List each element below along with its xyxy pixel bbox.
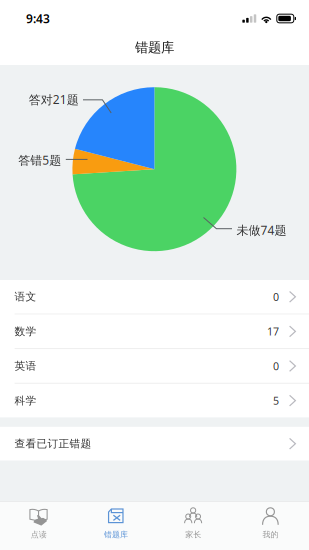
staticText: 错题库: [104, 530, 128, 539]
button[interactable]: 查看已订正错题: [0, 427, 309, 460]
staticText: 答对21题: [29, 91, 79, 107]
staticText: 英语: [15, 359, 37, 372]
button[interactable]: 我的: [232, 501, 309, 550]
button[interactable]: 点读: [0, 501, 77, 550]
staticText: 数学: [15, 325, 37, 338]
staticText: 错题库: [135, 39, 174, 56]
staticText: 0: [273, 359, 279, 373]
button[interactable]: 科学: [0, 384, 309, 417]
staticText: 0: [273, 290, 279, 304]
button[interactable]: 数学: [0, 315, 309, 348]
staticText: 17: [267, 324, 279, 338]
staticText: 5: [273, 393, 279, 408]
button[interactable]: 语文: [0, 280, 309, 314]
staticText: 语文: [15, 290, 37, 303]
staticText: 点读: [31, 530, 47, 539]
staticText: 答错5题: [18, 152, 61, 168]
button[interactable]: 错题库: [77, 501, 154, 550]
button[interactable]: 英语: [0, 349, 309, 383]
button[interactable]: 家长: [154, 501, 232, 550]
staticText: 科学: [15, 394, 37, 407]
staticText: 9:43: [26, 10, 50, 26]
staticText: 家长: [185, 530, 201, 539]
staticText: 我的: [262, 530, 278, 539]
staticText: 未做74题: [236, 222, 286, 238]
staticText: 查看已订正错题: [15, 437, 92, 450]
